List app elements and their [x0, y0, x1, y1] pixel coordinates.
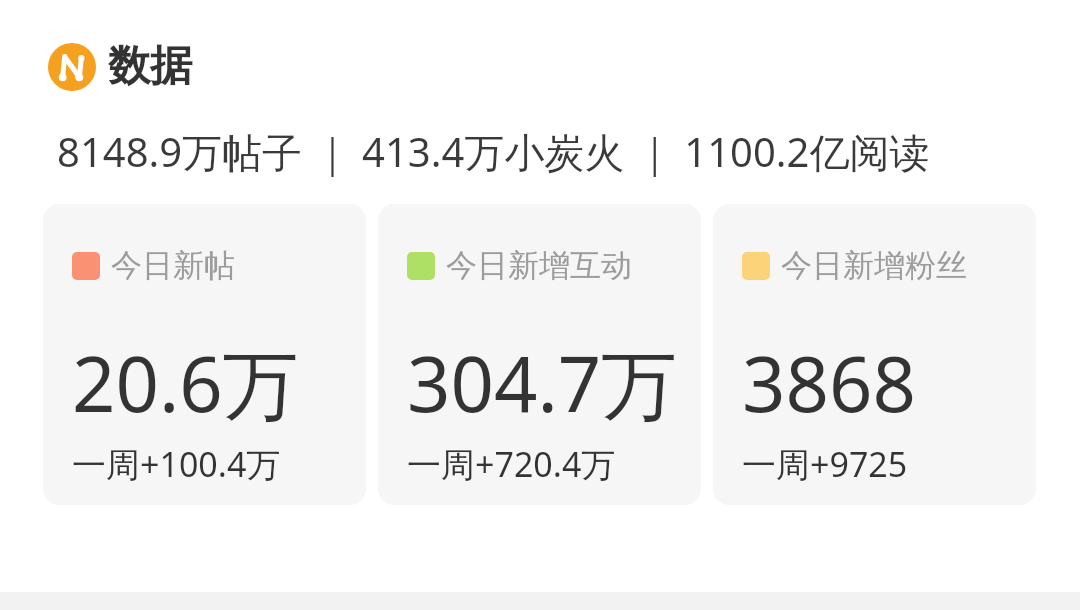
staticText: 一周+9725	[742, 441, 908, 487]
staticText: 20.6万	[72, 331, 299, 435]
staticText: 一周+100.4万	[72, 441, 281, 487]
button[interactable]: 今日新增互动	[378, 204, 701, 505]
staticText: 304.7万	[407, 331, 678, 435]
button[interactable]: 今日新增粉丝	[713, 204, 1036, 505]
staticText: 今日新帖	[111, 246, 235, 285]
button[interactable]: 数据	[48, 40, 192, 93]
staticText: 8148.9万帖子 ｜ 413.4万小炭火 ｜ 1100.2亿阅读	[57, 124, 930, 179]
button[interactable]: 今日新帖	[43, 204, 366, 505]
staticText: 3868	[742, 331, 916, 435]
staticText: 数据	[108, 40, 192, 93]
staticText: 今日新增粉丝	[781, 246, 967, 285]
staticText: 一周+720.4万	[407, 441, 616, 487]
staticText: 今日新增互动	[446, 246, 632, 285]
